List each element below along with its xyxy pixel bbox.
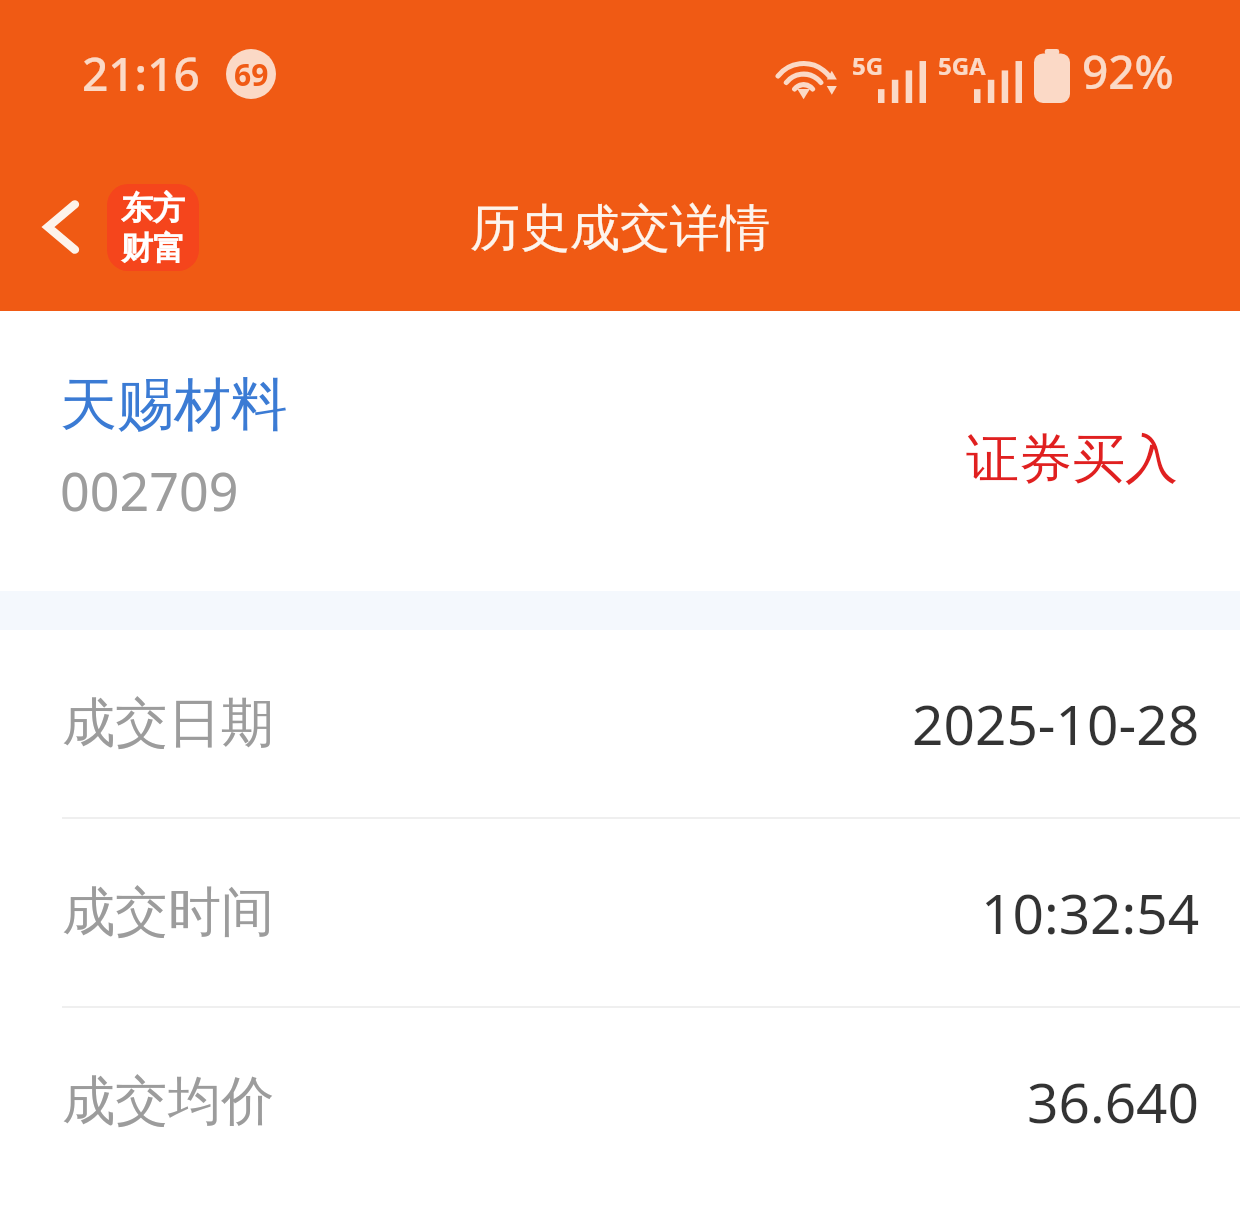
staticText: 证券买入 xyxy=(966,426,1178,493)
staticText: 92% xyxy=(1082,40,1174,103)
button[interactable]: Back xyxy=(12,177,112,277)
staticText: 成交时间 xyxy=(62,879,274,946)
button[interactable]: 成交时间 xyxy=(0,819,1240,1006)
button[interactable]: 成交日期 xyxy=(0,630,1240,817)
staticText: 成交均价 xyxy=(62,1068,274,1135)
staticText: 2025-10-28 xyxy=(912,686,1200,761)
staticText: 10:32:54 xyxy=(981,875,1200,950)
staticText: 5GA xyxy=(938,49,986,82)
button[interactable]: 东方财富 xyxy=(107,184,199,271)
staticText: 36.640 xyxy=(1027,1064,1200,1139)
staticText: 5G xyxy=(852,49,884,82)
staticText: 历史成交详情 xyxy=(470,197,770,260)
button[interactable]: 成交均价 xyxy=(0,1008,1240,1195)
staticText: 002709 xyxy=(60,455,239,526)
staticText: 天赐材料 xyxy=(60,369,288,441)
staticText: 69 xyxy=(234,54,269,95)
staticText: 东方 xyxy=(121,188,185,228)
staticText: 21:16 xyxy=(82,42,200,105)
staticText: 成交日期 xyxy=(62,690,274,757)
staticText: 财富 xyxy=(121,228,185,268)
